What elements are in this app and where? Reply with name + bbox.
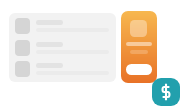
button[interactable] bbox=[121, 11, 157, 83]
button[interactable]: Payments bbox=[152, 78, 180, 106]
button[interactable] bbox=[9, 13, 116, 35]
button[interactable] bbox=[9, 56, 116, 78]
button[interactable] bbox=[9, 35, 116, 57]
